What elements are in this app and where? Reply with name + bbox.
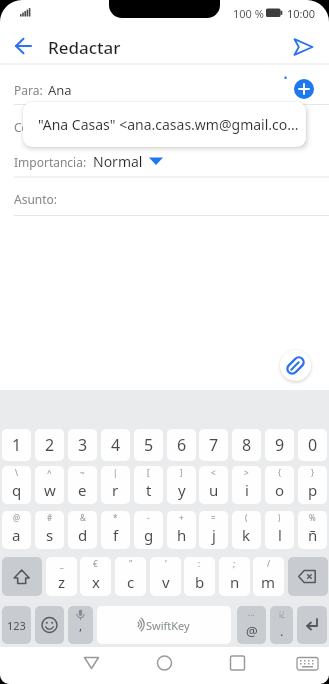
staticText: } bbox=[311, 467, 315, 478]
staticText: " bbox=[129, 558, 133, 569]
staticText: n bbox=[230, 572, 240, 592]
staticText: v bbox=[162, 572, 170, 592]
staticText: ^ bbox=[47, 467, 52, 478]
staticText: r bbox=[112, 480, 119, 500]
button[interactable]: , bbox=[68, 606, 93, 644]
staticText: ' bbox=[165, 558, 167, 569]
staticText: Normal bbox=[93, 152, 143, 171]
button[interactable]: 1 bbox=[2, 429, 31, 461]
button[interactable]: 9 bbox=[265, 429, 294, 461]
button[interactable]: 3 bbox=[68, 429, 97, 461]
staticText: Cc/Cco: bbox=[14, 119, 56, 135]
button[interactable]: > bbox=[232, 466, 261, 504]
staticText: ) bbox=[278, 512, 281, 523]
staticText: d bbox=[78, 525, 88, 545]
button[interactable]: } bbox=[298, 466, 327, 504]
staticText: , bbox=[79, 617, 83, 633]
button[interactable]: | bbox=[101, 466, 130, 504]
staticText: : bbox=[198, 558, 201, 569]
staticText: Ana bbox=[48, 81, 72, 99]
staticText: _ bbox=[60, 558, 64, 569]
button[interactable] bbox=[6, 34, 40, 60]
button[interactable]: # bbox=[35, 511, 64, 549]
staticText: > bbox=[244, 467, 249, 478]
staticText: 3 bbox=[78, 434, 88, 456]
button[interactable]: 4 bbox=[101, 429, 130, 461]
staticText: o bbox=[275, 480, 285, 500]
button[interactable]: 5 bbox=[134, 429, 163, 461]
staticText: Redactar bbox=[48, 36, 121, 59]
button[interactable] bbox=[2, 557, 42, 596]
button[interactable]: € bbox=[80, 557, 111, 596]
button[interactable]: ^ bbox=[35, 466, 64, 504]
staticText: ( bbox=[245, 512, 248, 523]
button[interactable]: ... bbox=[237, 606, 266, 644]
button[interactable] bbox=[35, 606, 64, 644]
button[interactable]: / bbox=[253, 557, 284, 596]
button[interactable]: + bbox=[167, 511, 196, 549]
button[interactable]: 7 bbox=[199, 429, 228, 461]
staticText: 7 bbox=[209, 434, 219, 456]
staticText: 10:00 bbox=[287, 6, 316, 21]
staticText: @ bbox=[246, 622, 258, 640]
button[interactable]: 0 bbox=[298, 429, 327, 461]
staticText: b bbox=[195, 572, 205, 592]
button[interactable]: _ bbox=[46, 557, 77, 596]
button[interactable] bbox=[288, 557, 328, 596]
button[interactable]: [ bbox=[134, 466, 163, 504]
staticText: h bbox=[177, 525, 187, 545]
button[interactable] bbox=[97, 606, 231, 644]
button[interactable]: ( bbox=[232, 511, 261, 549]
staticText: # bbox=[47, 512, 53, 523]
staticText: 9 bbox=[275, 434, 285, 456]
staticText: k bbox=[242, 525, 251, 545]
button[interactable] bbox=[280, 350, 311, 381]
button[interactable]: " bbox=[115, 557, 146, 596]
button[interactable]: ] bbox=[167, 466, 196, 504]
button[interactable]: ¡¿ bbox=[270, 606, 293, 644]
button[interactable] bbox=[294, 79, 314, 99]
staticText: f bbox=[113, 525, 119, 545]
button[interactable]: @ bbox=[2, 511, 31, 549]
staticText: p bbox=[308, 480, 318, 500]
button[interactable]: & bbox=[68, 511, 97, 549]
staticText: ¡¿ bbox=[279, 607, 285, 618]
button[interactable]: 6 bbox=[167, 429, 196, 461]
button[interactable]: % bbox=[298, 511, 327, 549]
staticText: 6 bbox=[177, 434, 187, 456]
staticText: ... bbox=[248, 607, 255, 618]
button[interactable] bbox=[288, 34, 320, 60]
staticText: 4 bbox=[111, 434, 121, 456]
staticText: "Ana Casas" <ana.casas.wm@gmail.co... bbox=[38, 115, 299, 134]
staticText: l bbox=[278, 525, 282, 545]
button[interactable]: = bbox=[199, 511, 228, 549]
staticText: z bbox=[58, 572, 66, 592]
button[interactable]: 123 bbox=[2, 606, 31, 644]
staticText: & bbox=[80, 512, 86, 523]
button[interactable]: - bbox=[134, 511, 163, 549]
button[interactable]: ' bbox=[150, 557, 181, 596]
button[interactable]: 8 bbox=[232, 429, 261, 461]
staticText: ] bbox=[180, 467, 183, 478]
staticText: m bbox=[261, 572, 276, 592]
staticText: y bbox=[178, 480, 186, 500]
staticText: 0 bbox=[308, 434, 318, 456]
button[interactable]: \ bbox=[2, 466, 31, 504]
staticText: Asunto: bbox=[14, 191, 58, 207]
staticText: 123 bbox=[7, 618, 26, 633]
button[interactable]: < bbox=[199, 466, 228, 504]
staticText: * bbox=[113, 512, 118, 523]
button[interactable]: : bbox=[184, 557, 215, 596]
button[interactable]: * bbox=[101, 511, 130, 549]
button[interactable]: "Ana Casas" <ana.casas.wm@gmail.co... bbox=[23, 102, 306, 147]
button[interactable]: { bbox=[265, 466, 294, 504]
staticText: a bbox=[12, 525, 21, 545]
staticText: Para: bbox=[14, 82, 43, 98]
button[interactable] bbox=[297, 606, 327, 644]
staticText: + bbox=[179, 512, 184, 523]
button[interactable]: ; bbox=[219, 557, 250, 596]
button[interactable]: 2 bbox=[35, 429, 64, 461]
staticText: s bbox=[46, 525, 54, 545]
button[interactable]: ) bbox=[265, 511, 294, 549]
button[interactable]: ~ bbox=[68, 466, 97, 504]
